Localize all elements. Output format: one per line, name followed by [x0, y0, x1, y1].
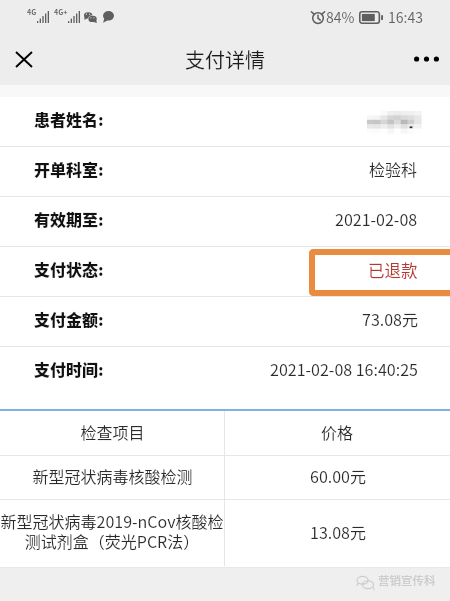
staticText: 检查项目 — [80, 420, 145, 443]
button[interactable]: 支付时间: — [0, 347, 450, 397]
staticText: 检验科 — [369, 157, 418, 180]
staticText: 16:43 — [388, 7, 423, 27]
button[interactable]: 已退款 — [309, 249, 450, 296]
staticText: 开单科室: — [34, 157, 104, 180]
button[interactable]: 患者姓名: — [0, 97, 450, 147]
staticText: 新型冠状病毒2019-nCov核酸检 测试剂盒（荧光PCR法） — [0, 509, 224, 553]
button[interactable]: Close — [0, 33, 48, 85]
staticText: 2021-02-08 — [335, 207, 418, 230]
button[interactable]: 支付金额: — [0, 297, 450, 347]
staticText: 患者姓名: — [34, 107, 104, 130]
staticText: 60.00元 — [310, 464, 366, 487]
staticText: 支付时间: — [34, 357, 104, 380]
staticText: 84% — [326, 7, 355, 27]
button[interactable]: 新型冠状病毒核酸检测 — [0, 456, 450, 499]
staticText: 13.08元 — [310, 520, 366, 543]
button[interactable]: 开单科室: — [0, 147, 450, 197]
staticText: 支付详情 — [185, 45, 265, 74]
staticText: 价格 — [321, 420, 354, 443]
staticText: 4G — [27, 7, 37, 17]
staticText: 有效期至: — [34, 207, 104, 230]
button[interactable]: 支付状态: — [0, 247, 450, 297]
button[interactable]: 新型冠状病毒2019-nCov核酸检 测试剂盒（荧光PCR法） — [0, 500, 450, 566]
staticText: 新型冠状病毒核酸检测 — [32, 464, 193, 487]
button[interactable]: More options — [402, 33, 450, 85]
staticText: 已退款 — [368, 258, 418, 282]
button[interactable]: 检查项目 — [0, 411, 450, 455]
button[interactable]: 有效期至: — [0, 197, 450, 247]
staticText: 4G+ — [54, 7, 68, 17]
staticText: 2021-02-08 16:40:25 — [270, 357, 418, 380]
staticText: 73.08元 — [362, 307, 418, 330]
staticText: 支付金额: — [34, 307, 104, 330]
staticText: 营销宣传科 — [378, 572, 436, 589]
staticText: 支付状态: — [34, 257, 104, 280]
